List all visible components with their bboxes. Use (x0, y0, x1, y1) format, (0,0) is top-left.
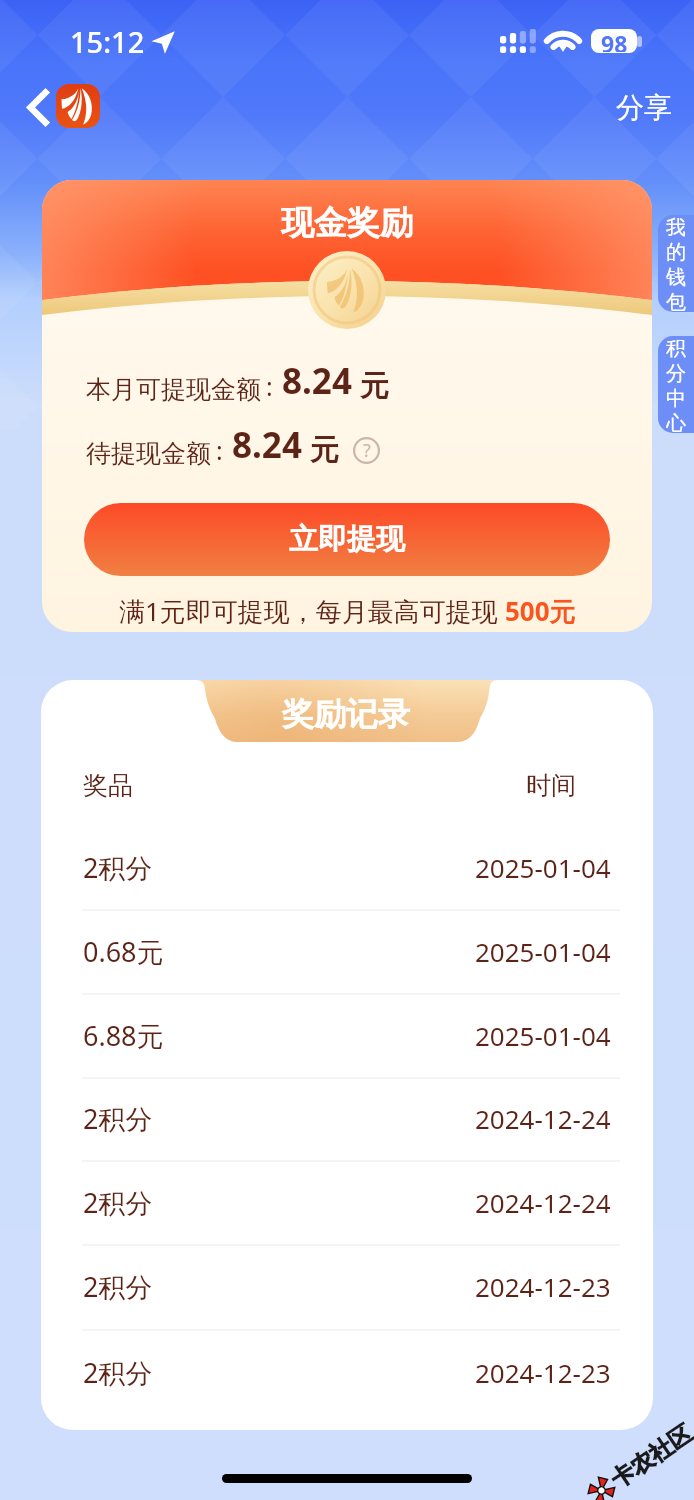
staticText: 2积分 (83, 1268, 153, 1305)
staticText: 元 (310, 432, 339, 469)
staticText: 时间 (526, 770, 576, 801)
staticText: 奖品 (83, 770, 133, 801)
button[interactable]: 我 (658, 215, 694, 312)
staticText: 500元 (505, 593, 576, 629)
staticText: 积 (666, 336, 686, 361)
staticText: 0.68元 (83, 933, 164, 970)
staticText: 立即提现 (289, 521, 405, 558)
staticText: 钱 (666, 265, 686, 290)
staticText: 2积分 (83, 849, 153, 886)
button[interactable]: 6.88元 (41, 993, 653, 1077)
staticText: 2积分 (83, 1184, 153, 1221)
button[interactable]: 积 (658, 336, 694, 433)
button[interactable]: 2积分 (41, 1076, 653, 1160)
staticText: 本月可提现金额 (86, 374, 261, 405)
button[interactable]: 2积分 (41, 825, 653, 909)
staticText: 2024-12-24 (475, 1101, 611, 1136)
button[interactable]: Back (10, 84, 58, 132)
button[interactable]: 2积分 (41, 1160, 653, 1244)
staticText: 15:12 (70, 22, 145, 61)
staticText: 8.24 (282, 357, 352, 405)
staticText: 8.24 (232, 421, 302, 469)
staticText: 元 (360, 368, 389, 405)
staticText: 的 (666, 240, 686, 265)
button[interactable]: 分享 (604, 78, 684, 136)
staticText: 包 (666, 290, 686, 312)
button[interactable]: App home (56, 84, 100, 128)
button[interactable]: Help (353, 437, 380, 464)
staticText: 分享 (616, 90, 672, 125)
staticText: 2积分 (83, 1100, 153, 1137)
staticText: 2024-12-24 (475, 1185, 611, 1220)
staticText: 分 (666, 361, 686, 386)
staticText: 奖励记录 (282, 694, 410, 734)
staticText: 2积分 (83, 1354, 153, 1391)
button[interactable]: 2积分 (41, 1330, 653, 1414)
staticText: 满1元即可提现，每月最高可提现 (119, 593, 498, 629)
button[interactable]: 2积分 (41, 1244, 653, 1328)
button[interactable]: 立即提现 (84, 503, 610, 576)
staticText: 2025-01-04 (475, 934, 611, 969)
staticText: 2025-01-04 (475, 850, 611, 885)
staticText: 现金奖励 (281, 202, 413, 244)
staticText: 心 (666, 411, 686, 433)
staticText: 卡农社区 (605, 1419, 694, 1494)
staticText: 2024-12-23 (475, 1355, 611, 1390)
staticText: 2024-12-23 (475, 1269, 611, 1304)
staticText: : (266, 369, 273, 403)
staticText: 98 (601, 29, 628, 52)
staticText: 我 (666, 215, 686, 240)
staticText: 6.88元 (83, 1017, 164, 1054)
staticText: : (216, 433, 223, 467)
staticText: 待提现金额 (86, 438, 211, 469)
staticText: 2025-01-04 (475, 1018, 611, 1053)
staticText: 中 (666, 386, 686, 411)
button[interactable]: 0.68元 (41, 909, 653, 993)
staticText: ? (363, 438, 371, 463)
